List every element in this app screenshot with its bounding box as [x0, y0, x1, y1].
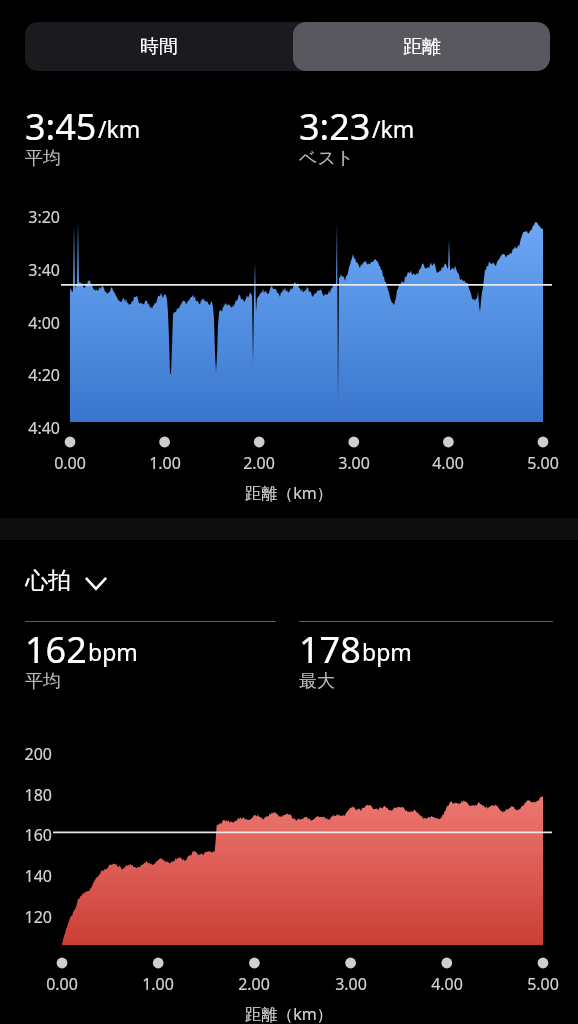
staticText: 5.00: [503, 973, 578, 995]
staticText: bpm: [362, 636, 412, 667]
staticText: 0.00: [30, 452, 110, 474]
staticText: 3:20: [0, 206, 60, 228]
staticText: 3:40: [0, 259, 60, 281]
staticText: 0.00: [22, 973, 102, 995]
staticText: 5.00: [503, 452, 578, 474]
staticText: 3.00: [311, 973, 391, 995]
staticText: 3:45: [25, 102, 97, 151]
other: Expand heart rate: [85, 570, 107, 592]
staticText: /km: [372, 113, 415, 144]
button[interactable]: 心拍: [25, 566, 107, 595]
staticText: 4.00: [408, 452, 488, 474]
staticText: 4.00: [407, 973, 487, 995]
staticText: 心拍: [25, 566, 71, 595]
staticText: 1.00: [118, 973, 198, 995]
staticText: 120: [0, 906, 52, 928]
staticText: bpm: [88, 636, 138, 667]
staticText: 平均: [25, 670, 61, 693]
staticText: 時間: [140, 35, 178, 59]
staticText: 162: [25, 625, 87, 674]
staticText: 4:00: [0, 312, 60, 334]
staticText: 200: [0, 743, 52, 765]
staticText: 140: [0, 865, 52, 887]
staticText: 178: [299, 625, 361, 674]
button[interactable]: 距離: [293, 22, 550, 71]
staticText: 距離: [403, 35, 441, 59]
button[interactable]: 時間: [25, 22, 293, 71]
staticText: 最大: [299, 670, 335, 693]
staticText: 2.00: [219, 452, 299, 474]
staticText: 3.00: [314, 452, 394, 474]
staticText: 2.00: [214, 973, 294, 995]
staticText: 平均: [25, 147, 61, 170]
staticText: 160: [0, 824, 52, 846]
staticText: 1.00: [125, 452, 205, 474]
staticText: 距離（km）: [0, 482, 578, 504]
staticText: 180: [0, 784, 52, 806]
staticText: ベスト: [299, 147, 355, 170]
staticText: 距離（km）: [0, 1003, 578, 1024]
staticText: 4:40: [0, 417, 60, 439]
staticText: /km: [98, 113, 141, 144]
staticText: 4:20: [0, 364, 60, 386]
staticText: 3:23: [299, 102, 371, 151]
